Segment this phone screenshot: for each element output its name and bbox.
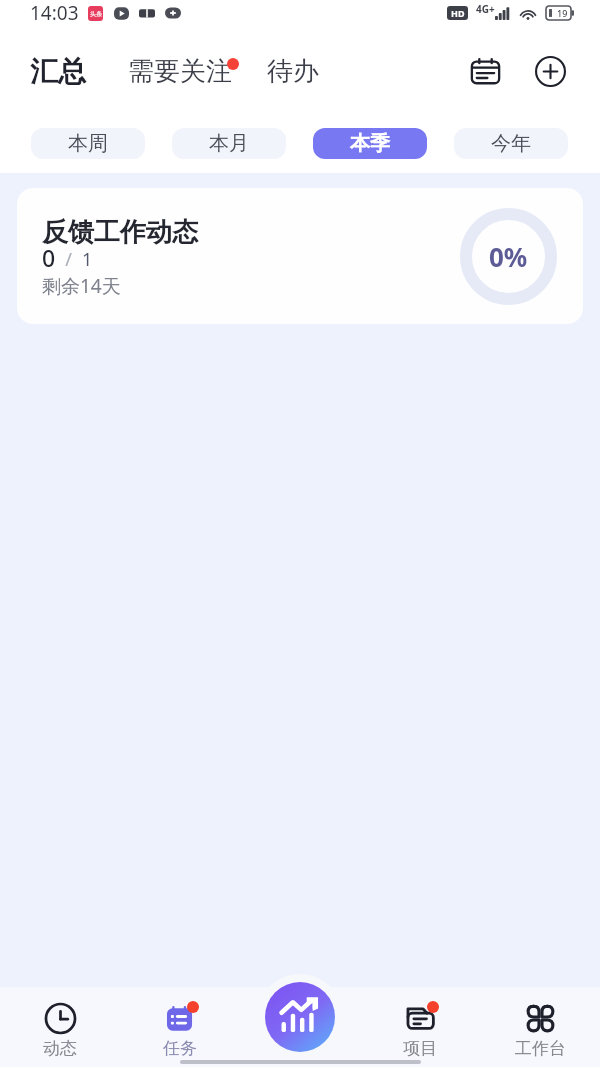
- staticText: 需要关注: [128, 55, 232, 88]
- staticText: 19: [557, 7, 568, 19]
- button[interactable]: 动态: [0, 987, 120, 1059]
- staticText: 今年: [491, 131, 531, 156]
- staticText: 任务: [163, 1038, 197, 1059]
- button[interactable]: 任务: [120, 987, 240, 1059]
- button[interactable]: Add: [530, 51, 570, 91]
- button[interactable]: 反馈工作动态: [17, 188, 583, 324]
- button[interactable]: Agenda: [465, 51, 505, 91]
- staticText: 0: [42, 242, 56, 273]
- staticText: 14:03: [30, 0, 79, 26]
- button[interactable]: 本月: [172, 128, 286, 159]
- staticText: /: [56, 247, 82, 272]
- staticText: 本月: [209, 131, 249, 156]
- staticText: 本季: [350, 131, 390, 156]
- button[interactable]: 本季: [313, 128, 427, 159]
- staticText: 0%: [489, 239, 528, 274]
- staticText: 反馈工作动态: [42, 216, 198, 249]
- button[interactable]: Statistics: [265, 982, 335, 1052]
- button[interactable]: 工作台: [480, 987, 600, 1059]
- staticText: 1: [82, 247, 93, 272]
- staticText: HD: [451, 7, 465, 19]
- button[interactable]: 项目: [360, 987, 480, 1059]
- button[interactable]: 汇总: [30, 54, 86, 89]
- staticText: 待办: [267, 55, 319, 88]
- staticText: 头条: [90, 10, 102, 18]
- button[interactable]: 待办: [267, 55, 319, 88]
- staticText: 项目: [403, 1038, 437, 1059]
- staticText: 剩余14天: [42, 273, 121, 299]
- staticText: 动态: [43, 1038, 77, 1059]
- staticText: 汇总: [30, 54, 86, 89]
- staticText: 4G+: [476, 2, 495, 16]
- staticText: 工作台: [515, 1038, 566, 1059]
- button[interactable]: 本周: [31, 128, 145, 159]
- button[interactable]: 需要关注: [128, 55, 232, 88]
- button[interactable]: 今年: [454, 128, 568, 159]
- staticText: 本周: [68, 131, 108, 156]
